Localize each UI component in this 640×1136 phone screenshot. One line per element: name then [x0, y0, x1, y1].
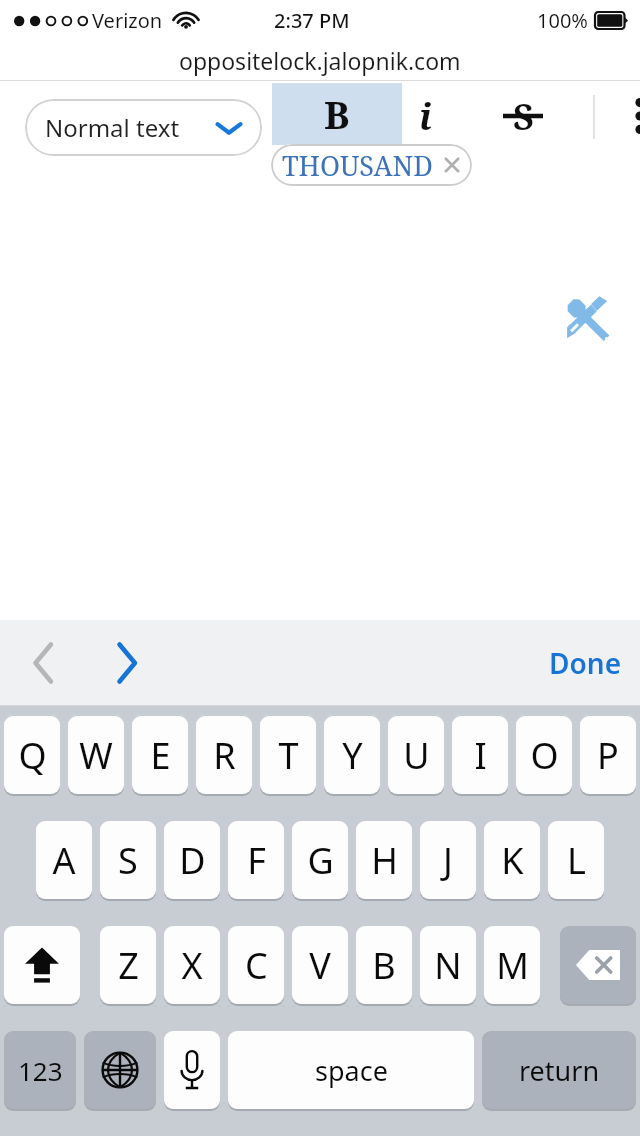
button[interactable]: Next field — [98, 634, 156, 692]
button[interactable]: L — [548, 821, 604, 899]
button[interactable]: S — [494, 87, 552, 145]
button[interactable]: U — [388, 716, 444, 794]
staticText: D — [179, 836, 206, 885]
button[interactable]: Publish — [325, 1066, 596, 1136]
button[interactable]: S — [100, 821, 156, 899]
staticText: Y — [342, 731, 363, 780]
button[interactable]: C — [228, 926, 284, 1004]
staticText: O — [530, 731, 559, 780]
button[interactable]: Remove link — [441, 154, 463, 176]
staticText: R — [213, 731, 236, 780]
button[interactable]: A — [36, 821, 92, 899]
staticText: K — [501, 836, 524, 885]
staticText: Cancel — [141, 1084, 222, 1119]
staticText: H — [371, 836, 398, 885]
button[interactable]: I — [452, 716, 508, 794]
staticText: M — [496, 941, 529, 990]
button[interactable]: oppositelock.jalopnik.com — [179, 45, 461, 76]
staticText: space — [315, 1052, 388, 1089]
button[interactable]: H — [356, 821, 412, 899]
button[interactable]: i — [396, 87, 454, 145]
staticText: S — [513, 92, 534, 141]
staticText: C — [245, 941, 268, 990]
staticText: Normal text — [45, 111, 180, 144]
button[interactable]: N — [420, 926, 476, 1004]
staticText: J — [443, 836, 453, 885]
staticText: Done — [549, 644, 622, 682]
staticText: 2:37 PM — [274, 7, 350, 34]
staticText: A — [52, 836, 76, 885]
button[interactable]: Cancel — [46, 1066, 317, 1136]
button[interactable]: Done — [549, 644, 622, 682]
button[interactable]: J — [420, 821, 476, 899]
staticText: F — [247, 836, 266, 885]
button[interactable]: W — [68, 716, 124, 794]
button[interactable]: B — [356, 926, 412, 1004]
staticText: V — [309, 941, 331, 990]
button[interactable]: O — [516, 716, 572, 794]
button[interactable]: X — [164, 926, 220, 1004]
staticText: Verizon — [92, 7, 163, 34]
button[interactable]: Backspace — [560, 926, 636, 1004]
button[interactable]: V — [292, 926, 348, 1004]
button[interactable]: K — [484, 821, 540, 899]
button[interactable]: space — [228, 1031, 474, 1109]
button[interactable]: Switch language — [84, 1031, 156, 1109]
staticText: Publish — [416, 1084, 506, 1119]
button[interactable]: E — [132, 716, 188, 794]
staticText: i — [419, 92, 432, 141]
staticText: THOUSAND — [282, 147, 433, 184]
staticText: P — [597, 731, 619, 780]
button[interactable]: T — [260, 716, 316, 794]
staticText: I — [474, 731, 487, 780]
button[interactable]: M — [484, 926, 540, 1004]
button[interactable]: Z — [100, 926, 156, 1004]
staticText: 123 — [18, 1053, 63, 1088]
staticText: Z — [118, 941, 139, 990]
staticText: 100% — [537, 7, 588, 34]
staticText: W — [79, 731, 113, 780]
button[interactable]: F — [228, 821, 284, 899]
staticText: N — [434, 941, 462, 990]
staticText: return — [519, 1052, 600, 1089]
staticText: S — [118, 836, 138, 885]
staticText: B — [324, 88, 350, 140]
staticText: E — [150, 731, 171, 780]
staticText: Q — [18, 731, 47, 780]
button[interactable]: B — [272, 83, 402, 145]
button[interactable]: THOUSAND — [271, 144, 472, 186]
button[interactable]: Previous field — [14, 634, 72, 692]
staticText: T — [278, 731, 299, 780]
staticText: G — [307, 836, 334, 885]
button[interactable]: D — [164, 821, 220, 899]
button[interactable]: Dictate — [164, 1031, 220, 1109]
staticText: X — [181, 941, 203, 990]
button[interactable]: More options — [622, 89, 640, 143]
button[interactable]: R — [196, 716, 252, 794]
button[interactable]: 123 — [4, 1031, 76, 1109]
button[interactable]: G — [292, 821, 348, 899]
button[interactable]: Q — [4, 716, 60, 794]
button[interactable]: return — [482, 1031, 636, 1109]
button[interactable]: Y — [324, 716, 380, 794]
button[interactable]: Shift — [4, 926, 80, 1004]
button[interactable]: Editing tools — [554, 287, 620, 353]
staticText: B — [372, 941, 396, 990]
staticText: L — [567, 836, 586, 885]
staticText: U — [403, 731, 430, 780]
button[interactable]: P — [580, 716, 636, 794]
button[interactable]: Normal text — [25, 99, 262, 156]
